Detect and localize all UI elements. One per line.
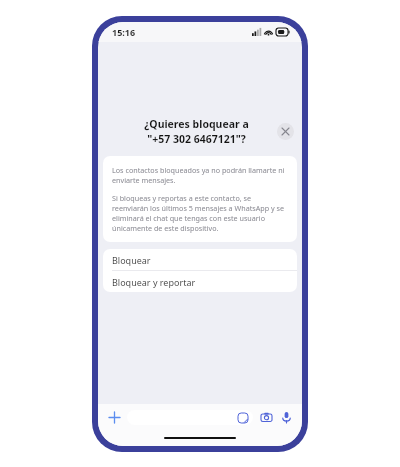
staticText: "+57 302 6467121"?: [147, 132, 246, 146]
staticText: Si bloqueas y reportas a este contacto, …: [112, 193, 288, 233]
button[interactable]: Bloquear y reportar: [103, 271, 297, 292]
button[interactable]: [127, 410, 253, 425]
button[interactable]: Bloquear: [103, 249, 297, 270]
button[interactable]: Cerrar: [277, 123, 294, 140]
staticText: 15:16: [112, 26, 136, 38]
staticText: ¿Quieres bloquear a: [144, 117, 249, 131]
button[interactable]: Micrófono: [279, 410, 294, 425]
staticText: Bloquear: [112, 254, 151, 266]
button[interactable]: Cámara: [259, 410, 274, 425]
button[interactable]: Adjuntar: [106, 409, 122, 425]
staticText: Los contactos bloqueados ya no podrán ll…: [112, 165, 288, 185]
staticText: Bloquear y reportar: [112, 276, 196, 288]
